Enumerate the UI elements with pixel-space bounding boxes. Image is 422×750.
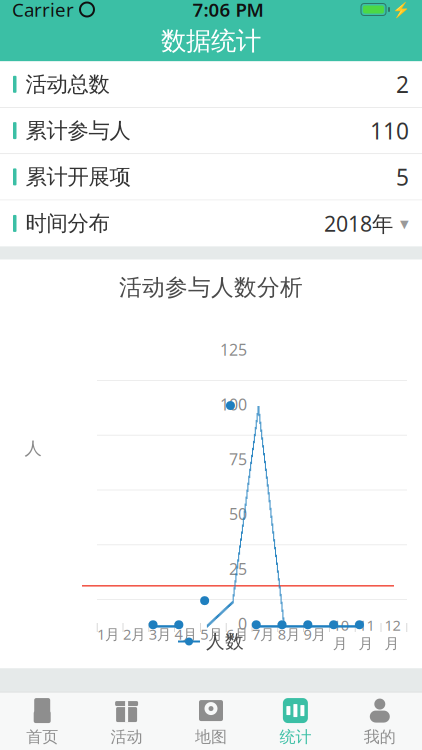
staticText: 统计 xyxy=(279,727,311,747)
staticText: 数据统计 xyxy=(161,25,261,56)
button[interactable]: 时间分布 xyxy=(0,200,422,246)
staticText: 首页 xyxy=(26,727,58,747)
staticText: 活动总数 xyxy=(25,71,109,97)
button[interactable]: 活动 xyxy=(84,692,169,750)
staticText: 5月 xyxy=(200,624,223,644)
staticText: 7:06 PM xyxy=(192,0,263,22)
staticText: 9月 xyxy=(303,624,326,644)
staticText: 50 xyxy=(229,503,247,524)
button[interactable]: 累计参与人 xyxy=(0,108,422,153)
staticText: 5 xyxy=(396,162,409,192)
staticText: 地图 xyxy=(195,727,227,747)
staticText: 活动 xyxy=(111,727,143,747)
staticText: 12月 xyxy=(384,615,400,653)
staticText: 25 xyxy=(229,558,247,579)
button[interactable]: 活动总数 xyxy=(0,61,422,107)
staticText: 0 xyxy=(238,613,247,634)
staticText: Carrier xyxy=(12,0,74,22)
staticText: 3月 xyxy=(149,624,172,644)
staticText: 人 xyxy=(24,438,41,459)
button[interactable]: 我的 xyxy=(338,692,422,750)
staticText: 100 xyxy=(220,394,247,415)
staticText: 时间分布 xyxy=(25,210,109,236)
staticText: 2月 xyxy=(123,624,146,644)
staticText: 125 xyxy=(220,339,247,360)
staticText: 110 xyxy=(370,115,409,146)
staticText: 10月 xyxy=(333,615,349,653)
staticText: 累计开展项 xyxy=(25,164,130,190)
staticText: 4月 xyxy=(174,624,197,644)
staticText: 活动参与人数分析 xyxy=(119,273,303,301)
button[interactable]: 地图 xyxy=(169,692,253,750)
staticText: 人数 xyxy=(206,630,244,653)
staticText: 2 xyxy=(396,69,409,99)
staticText: 2018年 xyxy=(324,209,393,238)
button[interactable]: 统计 xyxy=(253,692,338,750)
staticText: ⚡ xyxy=(392,1,410,18)
staticText: 7月 xyxy=(252,624,275,644)
staticText: ▾ xyxy=(400,214,409,233)
button[interactable]: 累计开展项 xyxy=(0,154,422,200)
staticText: 我的 xyxy=(364,727,396,747)
staticText: 6月 xyxy=(226,624,249,644)
staticText: 11月 xyxy=(359,615,375,653)
staticText: 1月 xyxy=(97,624,120,644)
staticText: 8月 xyxy=(278,624,301,644)
staticText: 累计参与人 xyxy=(25,117,130,144)
button[interactable]: 首页 xyxy=(0,692,84,750)
staticText: 75 xyxy=(229,448,247,470)
